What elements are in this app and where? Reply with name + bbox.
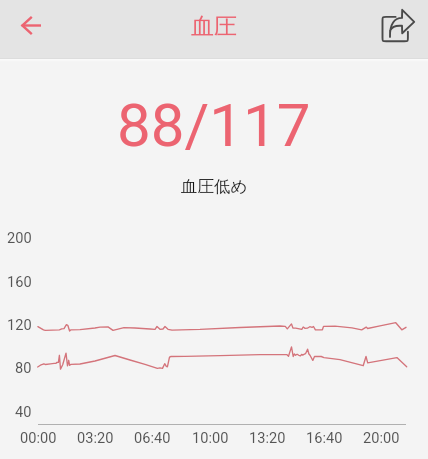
staticText: 10:00 [192,429,229,446]
staticText: 06:40 [134,429,171,446]
button[interactable]: Share [373,0,423,50]
staticText: 120 [7,316,32,333]
staticText: 血圧低め [181,176,248,197]
staticText: 80 [15,359,32,376]
button[interactable]: Back [6,0,55,50]
staticText: 00:00 [20,429,57,446]
staticText: 血圧 [191,12,237,41]
staticText: 160 [7,273,32,290]
staticText: 40 [15,403,32,420]
staticText: 16:40 [306,429,343,446]
staticText: 13:20 [249,429,286,446]
staticText: 20:00 [363,429,400,446]
staticText: 88/117 [117,90,311,160]
staticText: 200 [7,229,32,246]
staticText: 03:20 [77,429,114,446]
